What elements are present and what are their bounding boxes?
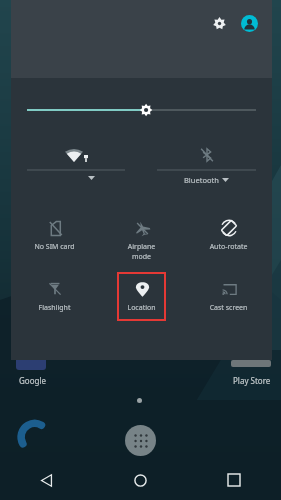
button[interactable]: Back <box>0 460 93 500</box>
button[interactable]: Phone <box>17 420 51 454</box>
staticText: Airplane mode <box>118 242 165 259</box>
button[interactable]: Recents <box>187 460 281 500</box>
button[interactable]: No SIM card <box>31 212 78 259</box>
button[interactable]: Settings <box>206 10 232 36</box>
staticText: Cast screen <box>205 303 252 313</box>
staticText: Play Store <box>233 375 271 386</box>
button[interactable]: Brightness <box>11 100 272 120</box>
button[interactable]: Cast screen <box>205 273 252 320</box>
button[interactable]: Auto-rotate <box>205 212 252 259</box>
staticText: Location <box>118 303 165 313</box>
button[interactable]: Wi-Fi <box>27 142 125 198</box>
staticText: Google <box>19 375 46 386</box>
button[interactable]: Home <box>93 460 187 500</box>
button[interactable]: Apps <box>125 425 156 456</box>
button[interactable]: Location <box>118 273 165 320</box>
button[interactable]: Google search <box>16 352 46 370</box>
button[interactable]: Flashlight <box>31 273 78 320</box>
staticText: No SIM card <box>31 242 78 252</box>
button[interactable]: Bluetooth <box>157 142 256 198</box>
button[interactable]: Play Store <box>231 360 271 367</box>
button[interactable]: Airplane mode <box>118 212 165 259</box>
staticText: Auto-rotate <box>205 242 252 252</box>
staticText: Bluetooth <box>184 175 219 185</box>
button[interactable]: User profile <box>236 10 262 36</box>
staticText: Flashlight <box>31 303 78 313</box>
